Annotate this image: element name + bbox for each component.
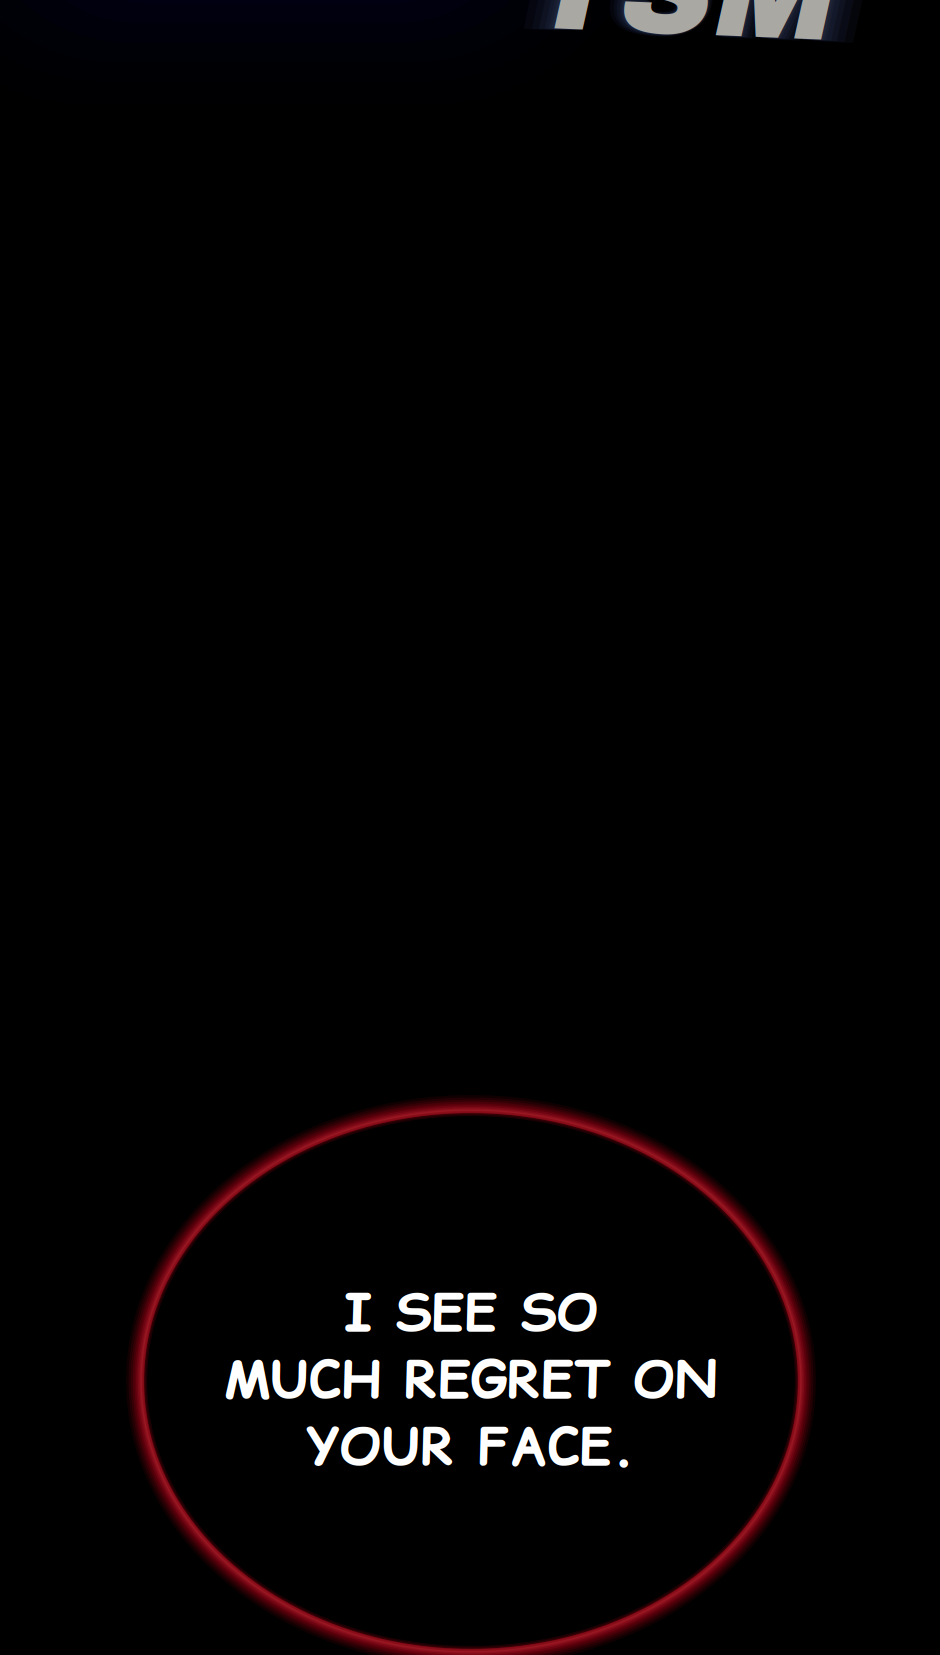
button[interactable]: Comic panel — tap to show reader control… <box>0 0 940 1655</box>
staticText: MUCH REGRET ON <box>224 1342 718 1416</box>
staticText: TSM <box>523 0 845 62</box>
staticText: I SEE SO <box>343 1275 598 1349</box>
staticText: TSM <box>511 0 856 65</box>
staticText: TSM <box>518 0 849 63</box>
staticText: TSM <box>493 0 874 69</box>
staticText: TSM <box>503 0 864 66</box>
staticText: YOUR FACE. <box>306 1409 635 1483</box>
staticText: TSM <box>530 0 838 61</box>
staticText: TSM <box>526 0 841 61</box>
